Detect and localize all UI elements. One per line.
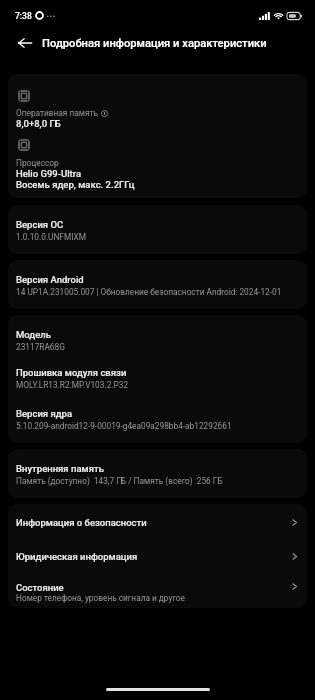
- staticText: Внутренняя память: [16, 463, 104, 474]
- staticText: Процессор: [16, 158, 59, 168]
- staticText: 1.0.10.0.UNFMIXM: [16, 232, 86, 242]
- staticText: Модель: [16, 329, 51, 340]
- button[interactable]: Версия ОС: [8, 205, 307, 242]
- staticText: Helio G99-Ultra Восемь ядер, макс. 2.2ГГ…: [16, 168, 135, 190]
- button[interactable]: Оперативная память: [8, 74, 307, 129]
- staticText: Номер телефона, уровень сигнала и другое: [16, 593, 185, 603]
- staticText: MOLY.LR13.R2.MP.V103.2.P32: [16, 380, 129, 390]
- staticText: Подробная информация и характеристики: [42, 37, 267, 50]
- button[interactable]: Версия Android: [8, 260, 307, 297]
- staticText: Информация о безопасности: [16, 517, 290, 528]
- button[interactable]: Информация о безопасности: [8, 504, 307, 541]
- staticText: Состояние: [16, 582, 64, 593]
- staticText: 23117RA68G: [16, 342, 65, 352]
- staticText: Юридическая информация: [16, 551, 290, 562]
- button[interactable]: Прошивка модуля связи: [8, 352, 307, 390]
- button[interactable]: Модель: [8, 315, 307, 352]
- staticText: 5.10.209-android12-9-00019-g4ea09a298bb4…: [16, 421, 232, 431]
- button[interactable]: Версия ядра: [8, 390, 307, 431]
- button[interactable]: Back: [18, 35, 33, 51]
- staticText: Прошивка модуля связи: [16, 367, 127, 378]
- staticText: 14 UP1A.231005.007 | Обновление безопасн…: [16, 287, 282, 297]
- staticText: Память (доступно) 143,7 ГБ / Память (все…: [16, 476, 223, 486]
- button[interactable]: Внутренняя память: [8, 449, 307, 486]
- staticText: Версия ОС: [16, 219, 64, 230]
- button[interactable]: Состояние: [8, 571, 307, 608]
- button[interactable]: Юридическая информация: [8, 541, 307, 571]
- staticText: Версия ядра: [16, 408, 73, 419]
- button[interactable]: Процессор: [8, 129, 307, 190]
- staticText: Оперативная память: [16, 108, 98, 118]
- staticText: 8,0+8,0 ГБ: [16, 118, 61, 129]
- staticText: 7:38: [15, 11, 32, 21]
- staticText: Версия Android: [16, 274, 84, 285]
